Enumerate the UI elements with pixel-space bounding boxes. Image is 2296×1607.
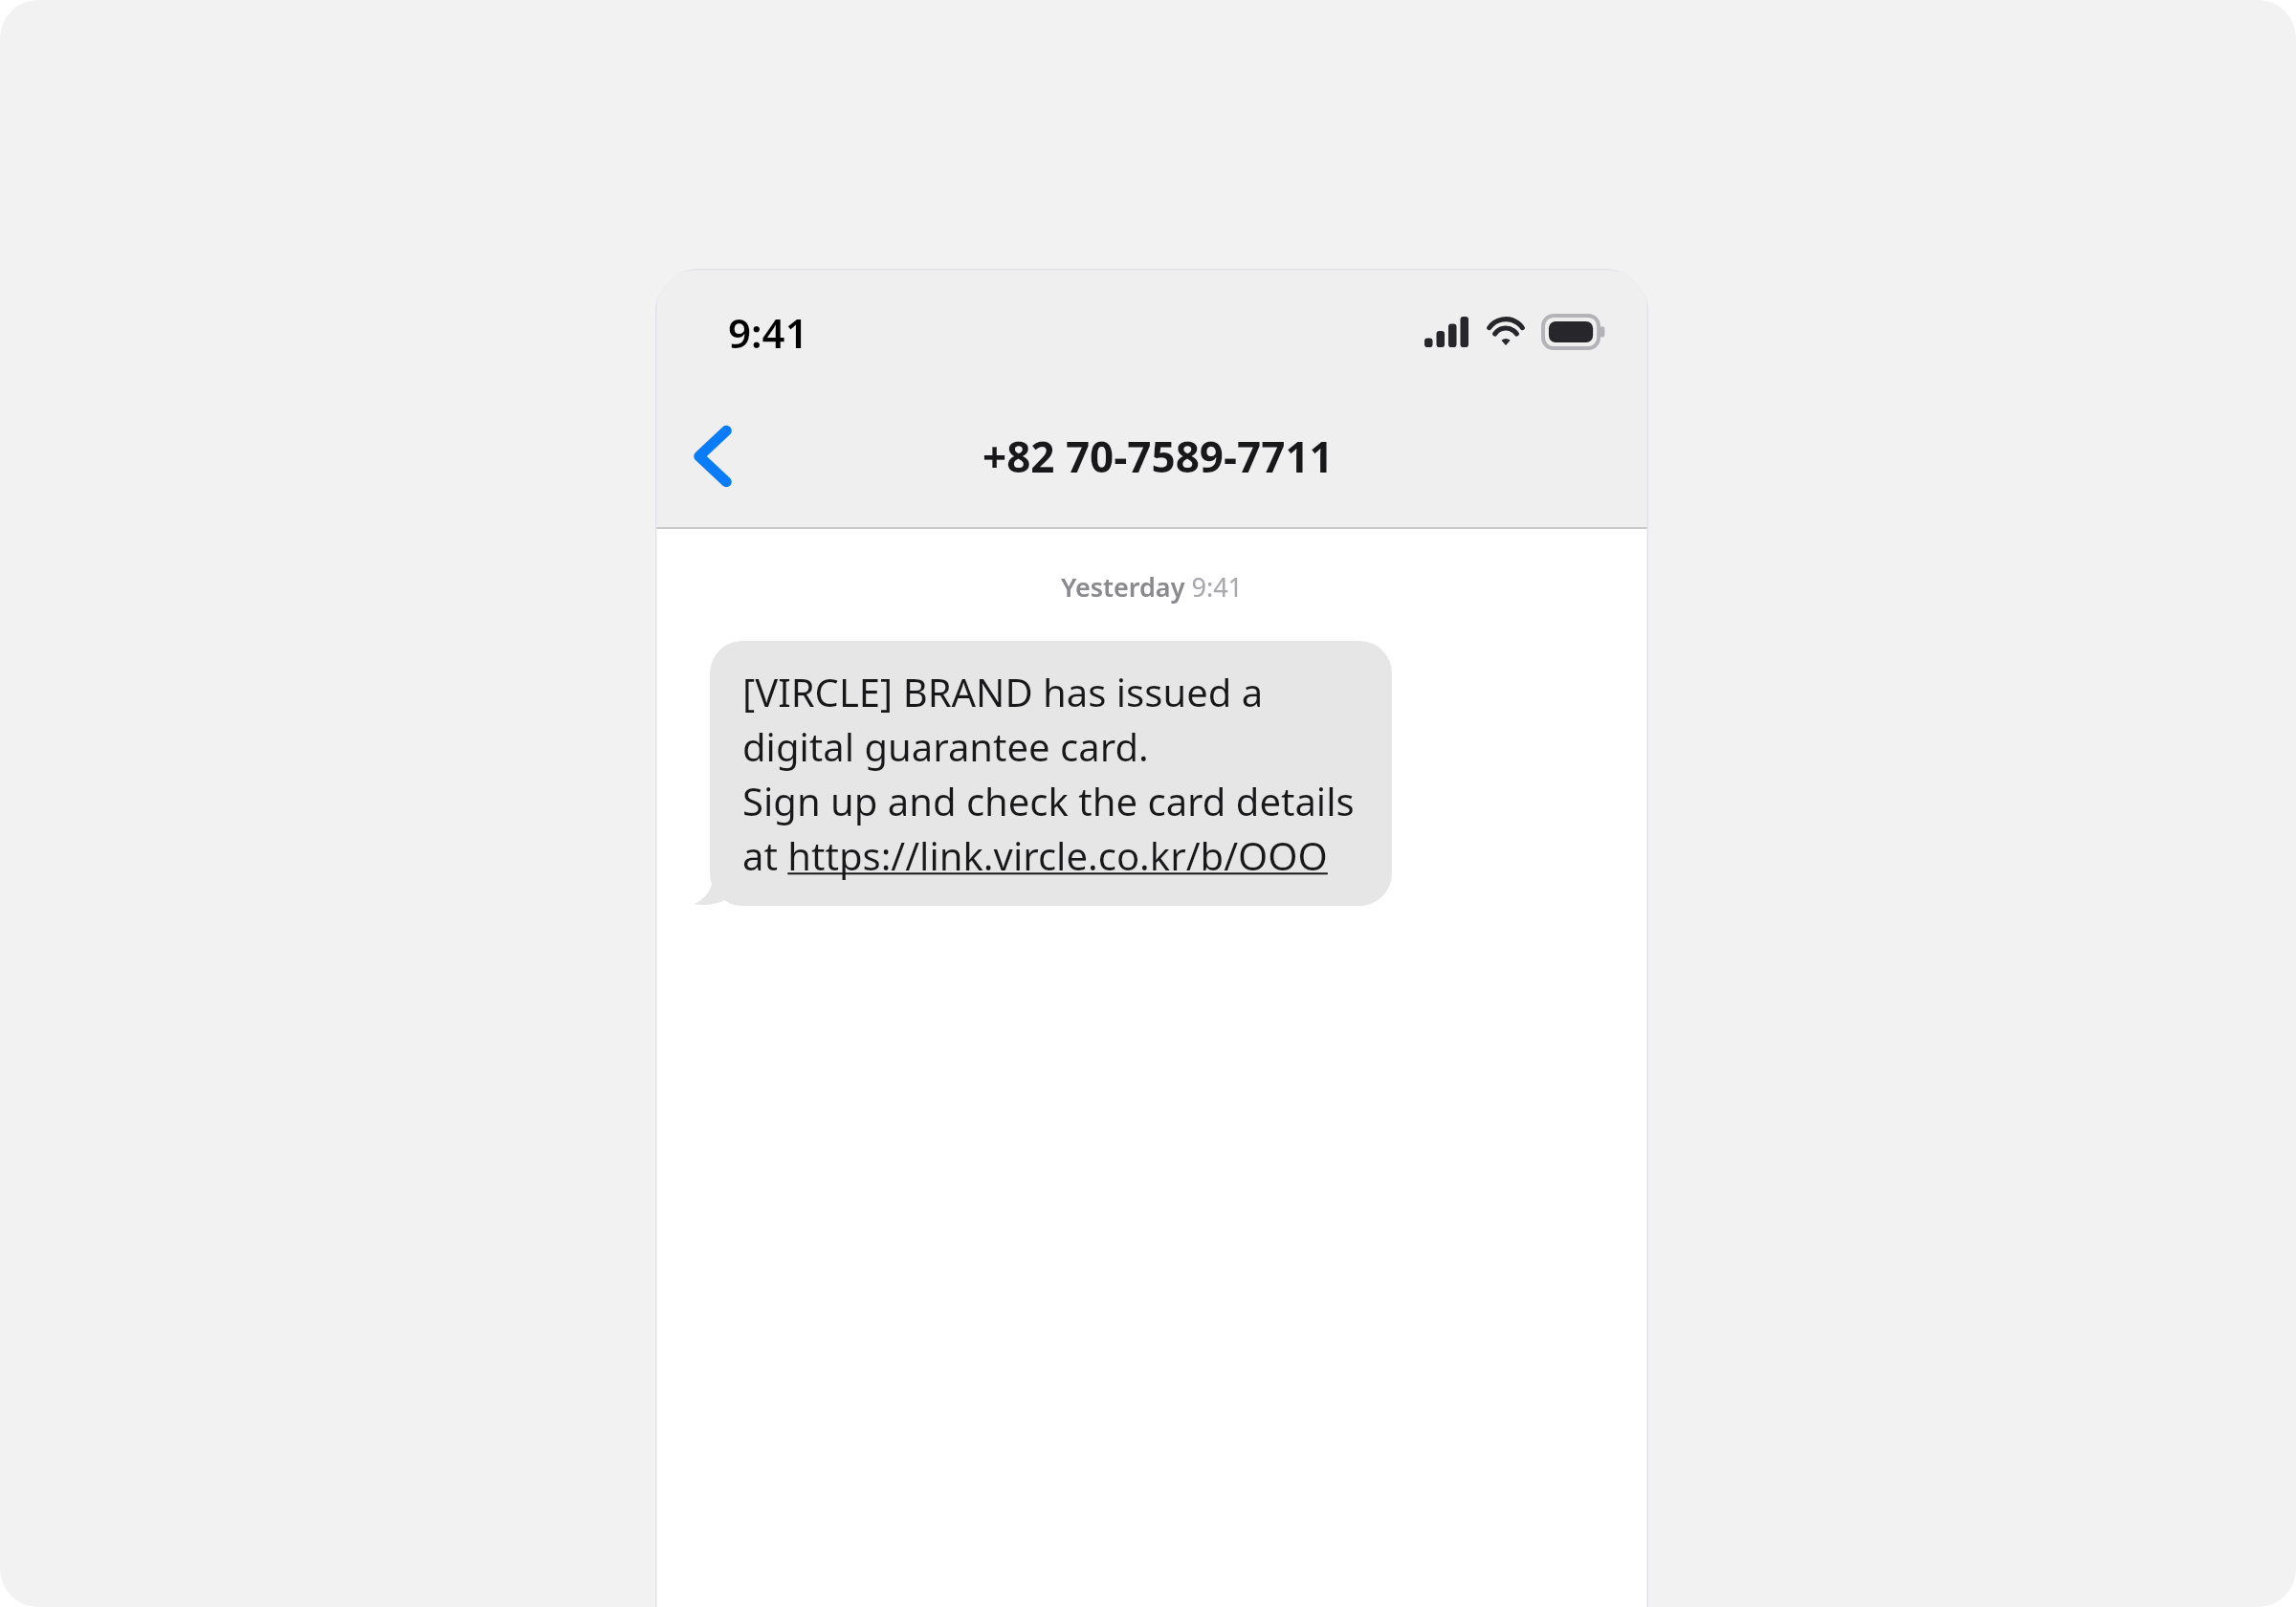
staticText: [VIRCLE] BRAND has issued a digital guar… — [742, 666, 1367, 881]
staticText: +82 70-7589-7711 — [982, 428, 1334, 485]
button[interactable]: [VIRCLE] BRAND has issued a digital guar… — [710, 641, 1392, 906]
staticText: 9:41 — [728, 305, 808, 360]
button[interactable]: Back — [667, 410, 759, 502]
staticText: Yesterday 9:41 — [1061, 569, 1244, 605]
